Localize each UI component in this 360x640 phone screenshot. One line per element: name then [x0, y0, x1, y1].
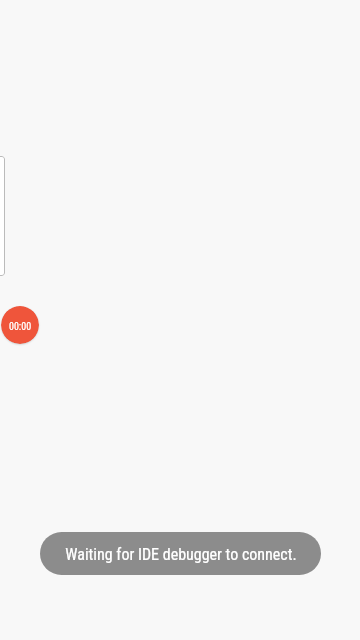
staticText: Waiting for IDE debugger to connect. — [65, 545, 297, 564]
button[interactable] — [0, 156, 5, 276]
staticText: 00:00 — [9, 321, 32, 333]
button[interactable]: Timer 00:00 — [1, 306, 39, 344]
